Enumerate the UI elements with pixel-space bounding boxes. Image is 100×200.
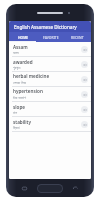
button[interactable]: Pronounce stability xyxy=(81,121,88,128)
button[interactable]: Pronounce herbal medicine xyxy=(81,76,88,83)
staticText: FAVORITE xyxy=(43,35,59,40)
staticText: ঢাল xyxy=(13,111,17,115)
button[interactable]: Pronounce slope xyxy=(81,106,88,113)
staticText: অসম xyxy=(13,51,19,55)
staticText: RECENT xyxy=(71,35,84,40)
button[interactable]: Pronounce awarded xyxy=(81,61,88,68)
button[interactable]: FAVORITE xyxy=(37,32,64,42)
staticText: HOME xyxy=(18,35,29,40)
staticText: Assam xyxy=(13,44,28,50)
button[interactable]: RECENT xyxy=(64,32,91,42)
staticText: পুৰস্কৃত xyxy=(13,66,21,70)
staticText: hypertension xyxy=(13,88,43,94)
button[interactable]: Assam xyxy=(9,42,91,57)
staticText: English Assamese Dictionary xyxy=(14,24,77,30)
staticText: herbal medicine xyxy=(13,73,50,79)
button[interactable]: HOME xyxy=(9,32,37,42)
button[interactable]: Pronounce hypertension xyxy=(81,91,88,98)
button[interactable]: hypertension xyxy=(9,87,91,102)
button[interactable]: herbal medicine xyxy=(9,72,91,87)
staticText: awarded xyxy=(13,59,33,65)
staticText: slope xyxy=(13,104,25,110)
staticText: ভেষজ ঔষধ xyxy=(13,80,26,85)
button[interactable]: awarded xyxy=(9,57,91,72)
button[interactable]: Pronounce Assam xyxy=(81,46,88,53)
staticText: স্থিৰতা xyxy=(13,126,20,130)
button[interactable]: English Assamese Dictionary xyxy=(9,21,91,32)
staticText: stability xyxy=(13,119,31,125)
button[interactable]: stability xyxy=(9,117,91,132)
button[interactable]: slope xyxy=(9,102,91,117)
staticText: উচ্চ ৰক্তচাপ xyxy=(13,95,26,100)
